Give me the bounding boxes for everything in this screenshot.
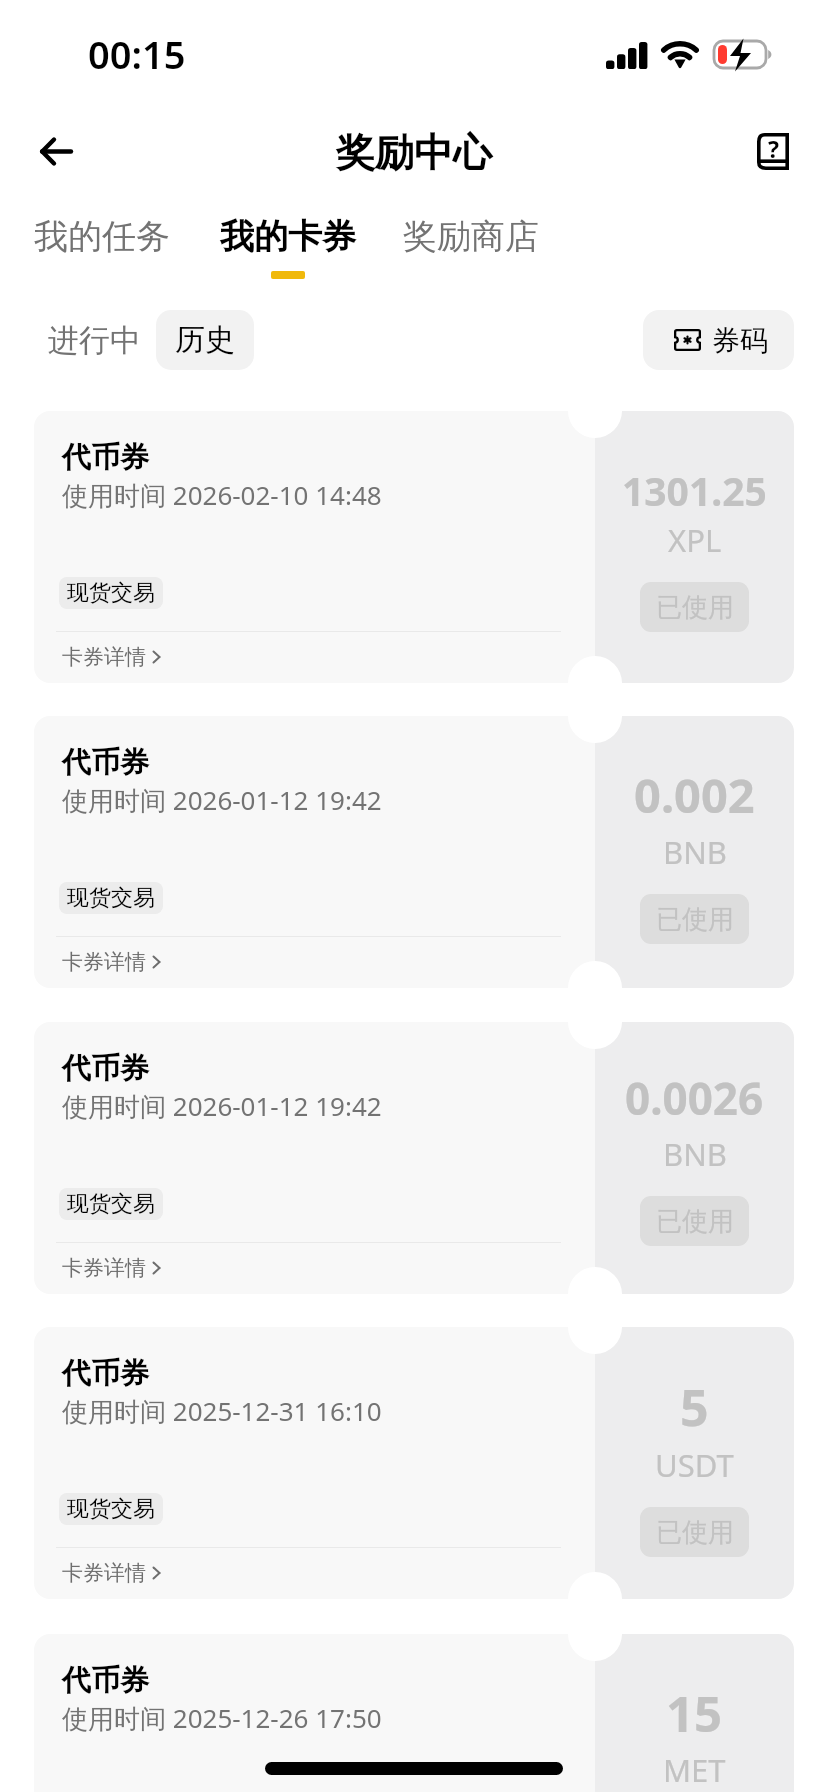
staticText: 现货交易 bbox=[67, 884, 155, 912]
staticText: 代币券 bbox=[62, 744, 149, 781]
button[interactable]: 我的卡券 bbox=[220, 215, 356, 279]
button[interactable]: 奖励商店 bbox=[403, 215, 539, 271]
staticText: 卡券详情 bbox=[62, 1560, 146, 1586]
staticText: 券码 bbox=[712, 323, 768, 358]
staticText: BNB bbox=[663, 831, 727, 873]
button[interactable]: 已使用 bbox=[640, 894, 749, 944]
staticText: 代币券 bbox=[62, 1355, 149, 1392]
staticText: 我的卡券 bbox=[220, 215, 356, 258]
staticText: 0.002 bbox=[634, 763, 755, 827]
staticText: 卡券详情 bbox=[62, 644, 146, 670]
button[interactable]: Help bbox=[742, 120, 804, 182]
staticText: 使用时间 2025-12-26 17:50 bbox=[62, 1700, 382, 1736]
staticText: 使用时间 2025-12-31 16:10 bbox=[62, 1393, 382, 1429]
button[interactable]: 代币券 bbox=[34, 411, 595, 683]
staticText: 现货交易 bbox=[67, 1495, 155, 1523]
staticText: BNB bbox=[663, 1133, 727, 1175]
button[interactable]: 5 bbox=[595, 1327, 794, 1599]
staticText: 0.0026 bbox=[625, 1068, 764, 1128]
staticText: 5 bbox=[680, 1373, 709, 1441]
button[interactable]: 代币券 bbox=[34, 716, 595, 988]
button[interactable]: 1301.25 bbox=[595, 411, 794, 683]
staticText: 历史 bbox=[175, 321, 235, 359]
staticText: 00:15 bbox=[88, 28, 186, 80]
staticText: XPL bbox=[668, 519, 722, 561]
button[interactable]: 已使用 bbox=[640, 1196, 749, 1246]
staticText: 现货交易 bbox=[67, 1190, 155, 1218]
button[interactable]: 0.0026 bbox=[595, 1022, 794, 1294]
staticText: 已使用 bbox=[656, 1516, 734, 1549]
button[interactable]: 代币券 bbox=[34, 1327, 595, 1599]
staticText: 已使用 bbox=[656, 1205, 734, 1238]
staticText: 代币券 bbox=[62, 439, 149, 476]
button[interactable]: 我的任务 bbox=[34, 215, 170, 271]
button[interactable]: 卡券详情 bbox=[56, 640, 169, 674]
button[interactable]: 代币券 bbox=[34, 1022, 595, 1294]
button[interactable]: 0.002 bbox=[595, 716, 794, 988]
staticText: ? bbox=[768, 133, 779, 162]
staticText: 使用时间 2026-01-12 19:42 bbox=[62, 782, 382, 818]
staticText: 现货交易 bbox=[67, 579, 155, 607]
staticText: 已使用 bbox=[656, 591, 734, 624]
button[interactable]: 已使用 bbox=[640, 582, 749, 632]
button[interactable]: 进行中 bbox=[36, 310, 153, 370]
staticText: 使用时间 2026-02-10 14:48 bbox=[62, 477, 382, 513]
staticText: 奖励商店 bbox=[403, 215, 539, 258]
button[interactable]: 15 bbox=[595, 1634, 794, 1792]
staticText: MET bbox=[663, 1749, 726, 1791]
staticText: 代币券 bbox=[62, 1662, 149, 1699]
button[interactable]: 历史 bbox=[156, 310, 254, 370]
button[interactable]: Redeem coupon code bbox=[643, 310, 794, 370]
staticText: 卡券详情 bbox=[62, 1255, 146, 1281]
staticText: 我的任务 bbox=[34, 215, 170, 258]
button[interactable]: 卡券详情 bbox=[56, 1556, 169, 1590]
button[interactable]: 卡券详情 bbox=[56, 945, 169, 979]
staticText: 1301.25 bbox=[622, 464, 767, 517]
button[interactable]: Back bbox=[24, 120, 86, 182]
staticText: 使用时间 2026-01-12 19:42 bbox=[62, 1088, 382, 1124]
staticText: 代币券 bbox=[62, 1050, 149, 1087]
staticText: 已使用 bbox=[656, 903, 734, 936]
staticText: 15 bbox=[666, 1680, 723, 1747]
staticText: 奖励中心 bbox=[336, 128, 492, 177]
staticText: USDT bbox=[655, 1444, 734, 1486]
staticText: 进行中 bbox=[48, 321, 141, 360]
staticText: 卡券详情 bbox=[62, 949, 146, 975]
button[interactable]: 已使用 bbox=[640, 1507, 749, 1557]
button[interactable]: 代币券 bbox=[34, 1634, 595, 1792]
button[interactable]: 卡券详情 bbox=[56, 1251, 169, 1285]
